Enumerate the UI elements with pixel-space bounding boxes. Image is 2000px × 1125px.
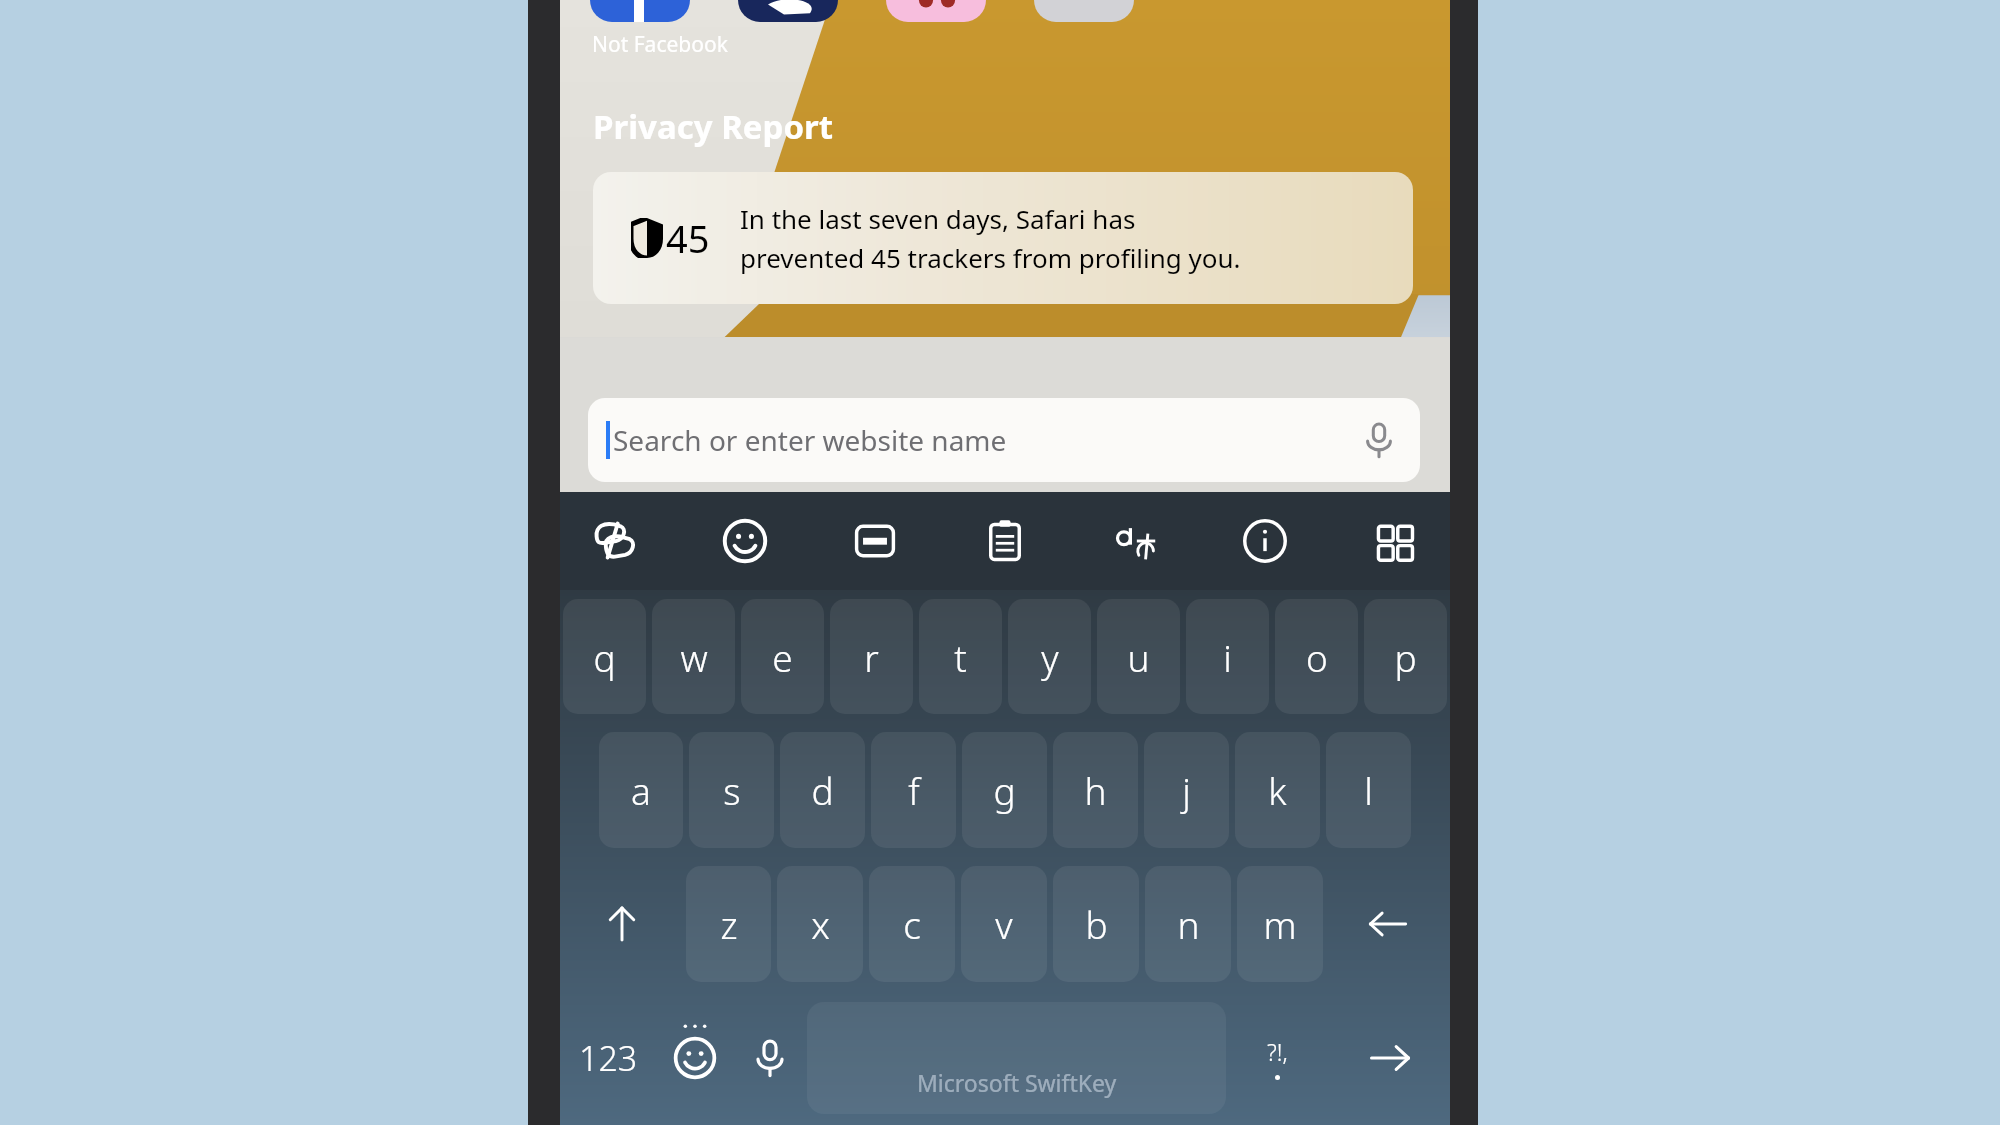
staticText: s xyxy=(723,765,741,815)
staticText: r xyxy=(864,632,879,682)
button[interactable]: Emoji xyxy=(657,991,732,1125)
button[interactable]: n xyxy=(1145,866,1231,982)
button[interactable]: Punctuation xyxy=(1226,991,1329,1125)
button[interactable]: t xyxy=(919,599,1002,714)
button[interactable]: j xyxy=(1144,732,1229,848)
button[interactable]: 123 xyxy=(560,991,657,1125)
button[interactable]: 45 xyxy=(593,172,1413,304)
button[interactable]: f xyxy=(871,732,956,848)
staticText: y xyxy=(1041,632,1059,682)
staticText: z xyxy=(720,899,738,949)
staticText: o xyxy=(1306,632,1328,682)
button[interactable]: Voice search xyxy=(1360,421,1398,459)
staticText: w xyxy=(680,632,708,682)
button[interactable]: m xyxy=(1237,866,1323,982)
staticText: k xyxy=(1268,765,1287,815)
button[interactable]: v xyxy=(961,866,1047,982)
button[interactable]: z xyxy=(686,866,771,982)
staticText: u xyxy=(1127,632,1150,682)
staticText: j xyxy=(1182,765,1191,815)
staticText: t xyxy=(954,632,967,682)
staticText: g xyxy=(993,765,1016,815)
button[interactable]: Clipboard xyxy=(970,506,1040,576)
staticText: l xyxy=(1364,765,1373,815)
button[interactable]: x xyxy=(777,866,863,982)
staticText: n xyxy=(1177,899,1200,949)
staticText: c xyxy=(903,899,921,949)
button[interactable]: i xyxy=(1186,599,1269,714)
button[interactable]: App icon xyxy=(738,0,838,22)
staticText: e xyxy=(772,632,793,682)
button[interactable]: k xyxy=(1235,732,1320,848)
staticText: b xyxy=(1085,899,1108,949)
button[interactable]: a xyxy=(599,732,683,848)
button[interactable]: u xyxy=(1097,599,1180,714)
button[interactable]: Backspace xyxy=(1329,866,1447,982)
button[interactable]: More xyxy=(1360,506,1430,576)
button[interactable]: GIF xyxy=(840,506,910,576)
button[interactable]: App icon xyxy=(886,0,986,22)
button[interactable]: Search or enter website name xyxy=(588,398,1420,482)
button[interactable]: Enter xyxy=(1329,991,1450,1125)
button[interactable]: h xyxy=(1053,732,1138,848)
staticText: Not Facebook xyxy=(592,30,728,59)
button[interactable]: l xyxy=(1326,732,1411,848)
button[interactable]: w xyxy=(652,599,735,714)
staticText: ?!, xyxy=(1267,1036,1288,1067)
button[interactable]: Emoji xyxy=(710,506,780,576)
button[interactable]: App icon xyxy=(1034,0,1134,22)
button[interactable]: App icon xyxy=(590,0,690,22)
button[interactable]: g xyxy=(962,732,1047,848)
staticText: 123 xyxy=(579,1035,638,1081)
button[interactable]: s xyxy=(689,732,774,848)
button[interactable]: q xyxy=(563,599,646,714)
button[interactable]: b xyxy=(1053,866,1139,982)
staticText: p xyxy=(1394,632,1417,682)
button[interactable]: e xyxy=(741,599,824,714)
button[interactable]: r xyxy=(830,599,913,714)
button[interactable]: o xyxy=(1275,599,1358,714)
staticText: i xyxy=(1223,632,1232,682)
button[interactable]: y xyxy=(1008,599,1091,714)
button[interactable]: Shift xyxy=(563,866,680,982)
staticText: d xyxy=(811,765,834,815)
staticText: h xyxy=(1084,765,1107,815)
button[interactable]: Voice input xyxy=(732,991,807,1125)
staticText: Microsoft SwiftKey xyxy=(917,1067,1117,1098)
button[interactable]: Microsoft SwiftKey xyxy=(807,1002,1226,1114)
staticText: f xyxy=(908,765,920,815)
staticText: 45 xyxy=(666,212,710,264)
button[interactable]: Info xyxy=(1230,506,1300,576)
staticText: Privacy Report xyxy=(593,104,834,149)
staticText: Search or enter website name xyxy=(613,421,1007,459)
button[interactable]: p xyxy=(1364,599,1447,714)
staticText: m xyxy=(1263,899,1297,949)
button[interactable]: SwiftKey xyxy=(580,506,650,576)
button[interactable]: c xyxy=(869,866,955,982)
staticText: q xyxy=(593,632,616,682)
button[interactable]: d xyxy=(780,732,865,848)
staticText: v xyxy=(995,899,1013,949)
button[interactable]: Language xyxy=(1100,506,1170,576)
staticText: x xyxy=(811,899,830,949)
staticText: In the last seven days, Safari has preve… xyxy=(740,201,1241,275)
staticText: a xyxy=(631,765,651,815)
